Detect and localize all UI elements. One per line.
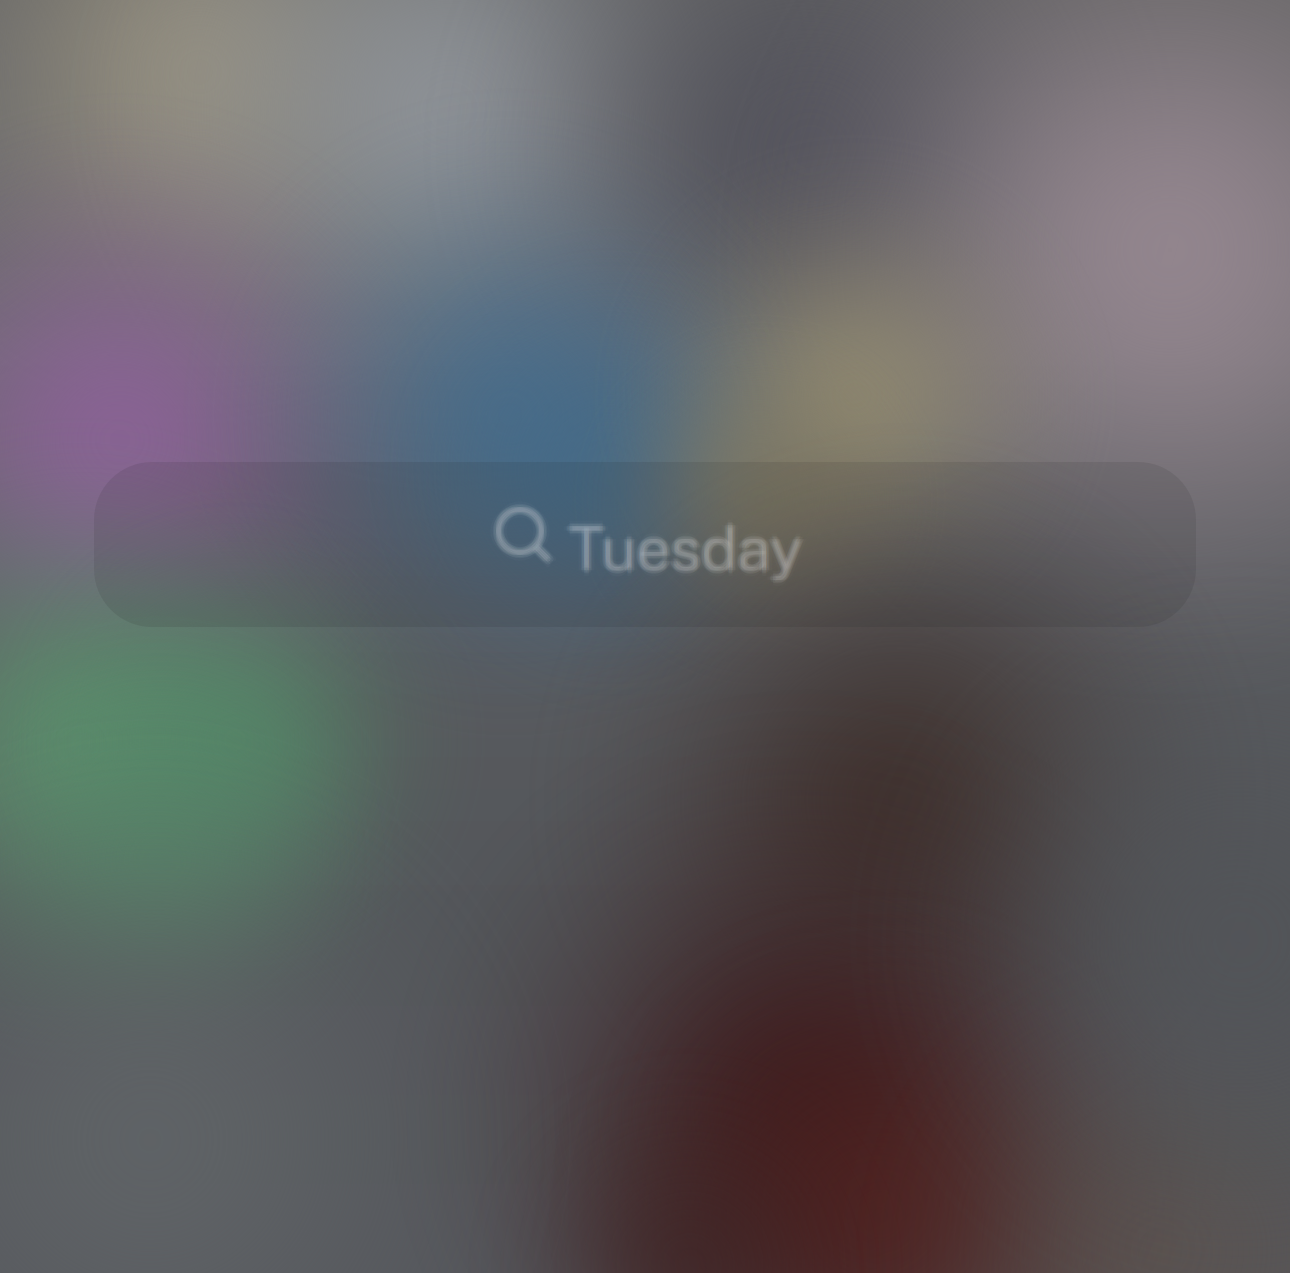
staticText: Tuesday <box>568 517 802 590</box>
staticText: Tuesday <box>570 510 804 582</box>
staticText: Tuesday <box>562 512 796 584</box>
staticText: Tuesday <box>573 512 807 584</box>
staticText: Tuesday <box>566 514 800 586</box>
staticText: Tuesday <box>568 509 802 581</box>
staticText: Tuesday <box>570 514 804 586</box>
staticText: Tuesday <box>568 515 802 587</box>
staticText: Tuesday <box>568 506 802 579</box>
staticText: Tuesday <box>571 512 805 584</box>
staticText: Tuesday <box>568 512 802 584</box>
staticText: Tuesday <box>566 510 800 582</box>
staticText: Tuesday <box>565 512 799 584</box>
button[interactable]: Tuesday <box>94 462 1196 627</box>
